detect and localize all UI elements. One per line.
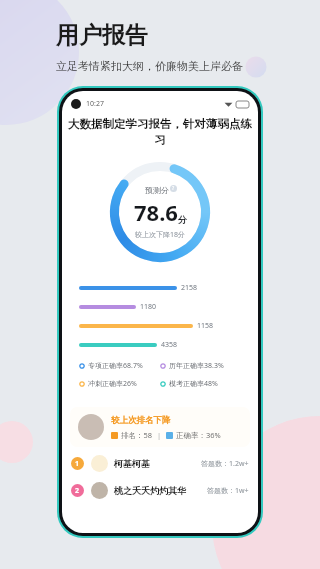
staticText: 历年正确率38.3% xyxy=(169,361,224,371)
staticText: 答题数：1.2w+ xyxy=(201,459,249,469)
staticText: 答题数：1w+ xyxy=(207,486,249,496)
button[interactable]: 第2名 xyxy=(62,482,258,499)
button[interactable]: 较上次排名下降 xyxy=(70,407,250,447)
other: 第1名 xyxy=(71,457,84,470)
staticText: 1 xyxy=(75,459,80,469)
button[interactable]: 第1名 xyxy=(62,455,258,472)
staticText: 大数据制定学习报告，针对薄弱点练习 xyxy=(67,117,253,147)
staticText: | xyxy=(157,430,162,440)
staticText: 柯基柯基 xyxy=(114,458,150,469)
staticText: 模考正确率48% xyxy=(169,379,218,389)
staticText: 桃之夭夭灼灼其华 xyxy=(114,485,186,496)
staticText: 78.6 xyxy=(134,197,178,227)
staticText: 专项正确率68.7% xyxy=(88,361,143,371)
staticText: 较上次下降18分 xyxy=(135,230,186,240)
staticText: ? xyxy=(172,185,175,192)
staticText: 4358 xyxy=(161,340,178,350)
staticText: 2158 xyxy=(181,283,198,293)
staticText: 较上次排名下降 xyxy=(111,415,171,426)
other: 说明 xyxy=(170,185,177,192)
staticText: 排名：58 xyxy=(121,430,153,440)
staticText: 分 xyxy=(178,214,187,225)
staticText: 2 xyxy=(75,486,80,496)
staticText: 1180 xyxy=(140,302,157,312)
staticText: 冲刺正确率26% xyxy=(88,379,137,389)
staticText: 立足考情紧扣大纲，价廉物美上岸必备 xyxy=(56,59,243,73)
staticText: 预测分 xyxy=(145,185,169,195)
staticText: 1158 xyxy=(197,321,214,331)
other: 第2名 xyxy=(71,484,84,497)
staticText: 10:27 xyxy=(86,99,104,109)
staticText: 用户报告 xyxy=(56,21,148,50)
staticText: 正确率：36% xyxy=(176,430,221,440)
